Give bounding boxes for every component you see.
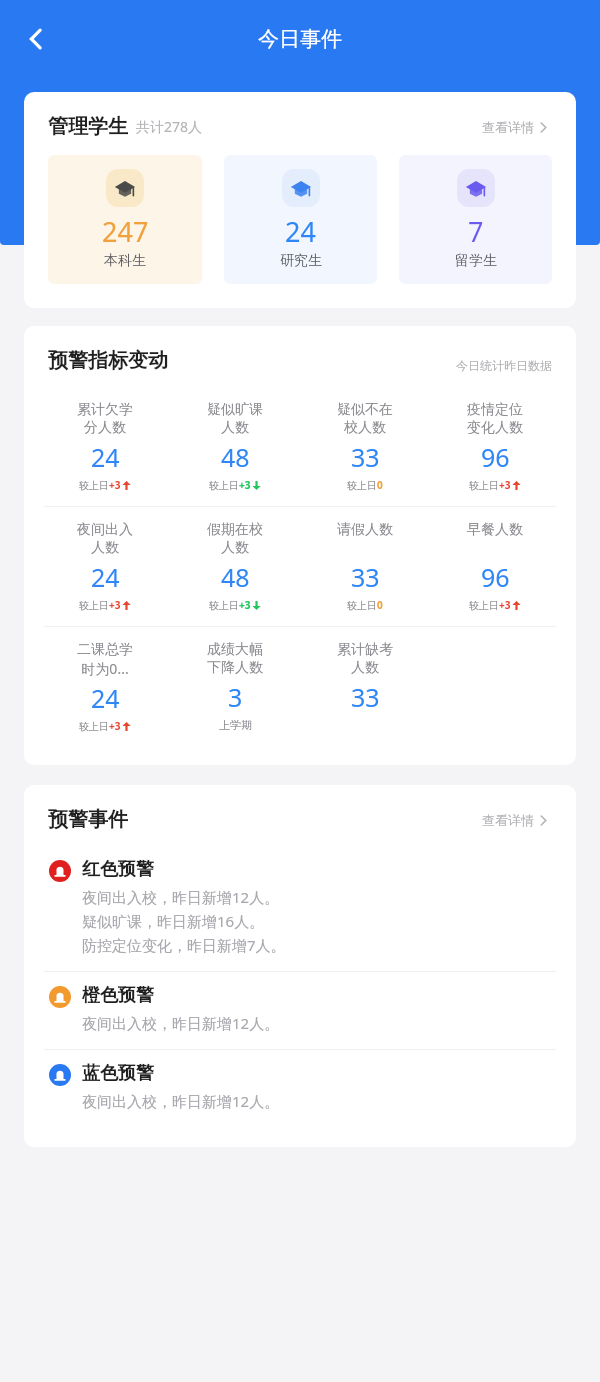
staticText: 假期在校 [207,521,263,539]
staticText: 较上日 [209,479,239,492]
button[interactable]: 成绩大幅 [170,637,300,736]
staticText: 查看详情 [482,812,534,828]
staticText: 247 [102,213,149,250]
staticText: 较上日 [209,599,239,612]
staticText: 夜间出入校，昨日新增12人。 [82,1013,280,1033]
staticText: 较上日 [347,599,377,612]
staticText: +3 [109,598,121,612]
staticText: 成绩大幅 [207,641,263,659]
staticText: 24 [91,681,120,715]
staticText: 人数 [221,419,249,437]
staticText: 48 [221,440,250,474]
button[interactable]: 二课总学 [40,637,170,737]
staticText: 今日统计昨日数据 [456,358,552,373]
staticText: 96 [481,440,510,474]
staticText: 分人数 [84,419,126,437]
staticText: +3 [499,598,511,612]
button[interactable]: 24 [224,155,377,284]
staticText: 累计欠学 [77,401,133,419]
staticText: 3 [228,680,243,714]
button[interactable]: 早餐人数 [430,517,560,616]
button[interactable]: Back [12,15,60,63]
staticText: 人数 [91,539,119,557]
staticText: 留学生 [455,252,497,270]
staticText: 研究生 [280,252,322,270]
staticText: 24 [91,440,120,474]
staticText: 疫情定位 [467,401,523,419]
staticText: 防控定位变化，昨日新增7人。 [82,935,286,955]
button[interactable]: 疫情定位 [430,397,560,496]
button[interactable]: 疑似不在 [300,397,430,496]
staticText: 0 [377,598,383,612]
staticText: 24 [91,560,120,594]
staticText: 今日事件 [258,26,342,52]
staticText: 33 [351,680,380,714]
button[interactable]: 红色预警 [24,846,576,971]
staticText: 橙色预警 [82,984,154,1007]
staticText: 累计缺考 [337,641,393,659]
staticText: +3 [109,478,121,492]
staticText: 疑似不在 [337,401,393,419]
button[interactable]: 7 [399,155,552,284]
button[interactable]: 夜间出入 [40,517,170,616]
staticText: 33 [351,560,380,594]
staticText: 蓝色预警 [82,1062,154,1085]
staticText: 共计278人 [136,117,203,136]
staticText: 24 [285,213,316,250]
staticText: 疑似旷课，昨日新增16人。 [82,911,265,931]
button[interactable]: 橙色预警 [24,972,576,1049]
staticText: 夜间出入校，昨日新增12人。 [82,1091,280,1111]
staticText: 二课总学 [77,641,133,659]
staticText: 33 [351,440,380,474]
staticText: 较上日 [79,479,109,492]
staticText: 96 [481,560,510,594]
button[interactable]: 查看详情 [478,808,552,832]
staticText: 时为0... [81,659,129,678]
button[interactable]: 请假人数 [300,517,430,616]
staticText: 较上日 [79,720,109,733]
staticText: 查看详情 [482,119,534,135]
staticText: +3 [109,719,121,733]
staticText: +3 [239,478,251,492]
staticText: 管理学生 [48,114,128,139]
staticText: 下降人数 [207,659,263,677]
button[interactable]: 累计欠学 [40,397,170,496]
staticText: 人数 [351,659,379,677]
staticText: +3 [239,598,251,612]
button[interactable]: 蓝色预警 [24,1050,576,1127]
staticText: 预警指标变动 [48,348,168,373]
button[interactable]: 查看详情 [478,115,552,139]
staticText: 48 [221,560,250,594]
staticText: 7 [468,213,484,250]
staticText: 预警事件 [48,807,128,832]
button[interactable]: 247 [48,155,202,284]
staticText: 夜间出入 [77,521,133,539]
staticText: 较上日 [347,479,377,492]
staticText: 人数 [221,539,249,557]
button[interactable]: 假期在校 [170,517,300,616]
staticText: 0 [377,478,383,492]
staticText: 校人数 [344,419,386,437]
staticText: 本科生 [104,252,146,270]
button[interactable]: 疑似旷课 [170,397,300,496]
staticText: 红色预警 [82,858,154,881]
staticText: +3 [499,478,511,492]
staticText: 较上日 [79,599,109,612]
staticText: 疑似旷课 [207,401,263,419]
staticText: 上学期 [219,718,252,732]
staticText: 较上日 [469,479,499,492]
staticText: 夜间出入校，昨日新增12人。 [82,887,280,907]
button[interactable]: 累计缺考 [300,637,430,735]
staticText: 早餐人数 [467,521,523,539]
staticText: 请假人数 [337,521,393,539]
staticText: 较上日 [469,599,499,612]
staticText: 变化人数 [467,419,523,437]
